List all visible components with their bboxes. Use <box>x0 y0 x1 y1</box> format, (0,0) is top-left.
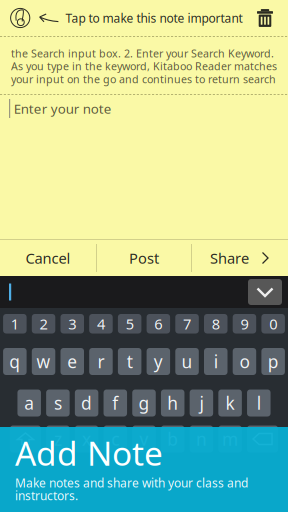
staticText: r <box>97 350 104 373</box>
staticText: c <box>111 427 119 450</box>
staticText: q <box>9 350 20 373</box>
button[interactable]: Cancel <box>0 240 96 276</box>
staticText: 8 <box>212 314 220 333</box>
button[interactable]: t <box>118 348 141 375</box>
staticText: 4 <box>97 314 105 333</box>
button[interactable]: u <box>175 348 199 375</box>
staticText: y <box>154 350 163 373</box>
staticText: As you type in the keyword, Kitaboo Read… <box>11 59 277 73</box>
button[interactable]: e <box>60 348 84 375</box>
staticText: j <box>199 391 203 414</box>
button[interactable]: 2 <box>32 314 55 333</box>
staticText: a <box>24 391 34 414</box>
staticText: Post <box>129 248 159 268</box>
staticText: g <box>138 391 149 414</box>
button[interactable]: Post <box>97 240 191 276</box>
staticText: Make notes and share with your class and <box>15 475 248 491</box>
staticText: e <box>67 350 77 373</box>
button[interactable]: 7 <box>175 314 199 333</box>
button[interactable]: l <box>247 389 270 416</box>
staticText: u <box>181 350 192 373</box>
button[interactable]: Shift <box>10 425 41 452</box>
staticText: k <box>226 391 235 414</box>
staticText: instructors. <box>15 488 78 503</box>
staticText: v <box>139 427 148 450</box>
button[interactable]: n <box>190 425 213 452</box>
button[interactable]: v <box>132 425 156 452</box>
button[interactable]: c <box>103 425 127 452</box>
button[interactable]: g <box>132 389 156 416</box>
button[interactable]: Backspace <box>247 425 278 452</box>
staticText: Tap to make this note important <box>65 10 242 26</box>
button[interactable]: p <box>261 348 285 375</box>
staticText: 7 <box>183 314 191 333</box>
staticText: the Search input box. 2. Enter your Sear… <box>11 46 274 60</box>
button[interactable]: d <box>75 389 98 416</box>
staticText: h <box>167 391 178 414</box>
button[interactable]: s <box>46 389 70 416</box>
staticText: 3 <box>68 314 76 333</box>
staticText: w <box>36 350 50 373</box>
staticText: Cancel <box>25 248 70 268</box>
button[interactable]: 8 <box>204 314 227 333</box>
button[interactable]: y <box>147 348 170 375</box>
button[interactable]: i <box>204 348 227 375</box>
staticText: 1 <box>11 314 19 333</box>
button[interactable]: j <box>190 389 213 416</box>
button[interactable]: 9 <box>233 314 256 333</box>
button[interactable]: z <box>46 425 70 452</box>
staticText: 5 <box>126 314 134 333</box>
staticText: 2 <box>39 314 47 333</box>
button[interactable]: f <box>103 389 127 416</box>
button[interactable]: b <box>161 425 184 452</box>
button[interactable]: Delete note <box>257 9 288 27</box>
button[interactable]: 5 <box>118 314 141 333</box>
staticText: 6 <box>154 314 162 333</box>
button[interactable]: h <box>161 389 184 416</box>
staticText: l <box>257 391 261 414</box>
button[interactable]: 3 <box>60 314 84 333</box>
button[interactable]: 0 <box>261 314 285 333</box>
staticText: p <box>268 350 279 373</box>
button[interactable]: a <box>17 389 41 416</box>
button[interactable]: Mark note important <box>0 8 37 28</box>
button[interactable]: 1 <box>3 314 27 333</box>
staticText: o <box>239 350 249 373</box>
staticText: f <box>112 391 118 414</box>
button[interactable]: 4 <box>89 314 113 333</box>
staticText: t <box>127 350 133 373</box>
staticText: 0 <box>269 314 277 333</box>
button[interactable]: Share <box>192 240 288 276</box>
staticText: s <box>54 391 62 414</box>
staticText: Add Note <box>15 431 163 475</box>
staticText: Share <box>210 248 249 268</box>
staticText: z <box>54 427 62 450</box>
button[interactable]: o <box>233 348 256 375</box>
staticText: x <box>82 427 91 450</box>
staticText: 9 <box>240 314 248 333</box>
button[interactable]: Hide keyboard <box>248 279 288 305</box>
staticText: i <box>214 350 218 373</box>
button[interactable]: r <box>89 348 113 375</box>
button[interactable]: k <box>218 389 242 416</box>
button[interactable]: x <box>75 425 98 452</box>
button[interactable]: m <box>218 425 242 452</box>
staticText: d <box>81 391 92 414</box>
staticText: your input on the go and continues to re… <box>11 72 276 86</box>
staticText: Enter your note <box>14 100 112 117</box>
button[interactable]: w <box>32 348 55 375</box>
button[interactable]: 6 <box>147 314 170 333</box>
staticText: b <box>167 427 178 450</box>
button[interactable]: q <box>3 348 27 375</box>
